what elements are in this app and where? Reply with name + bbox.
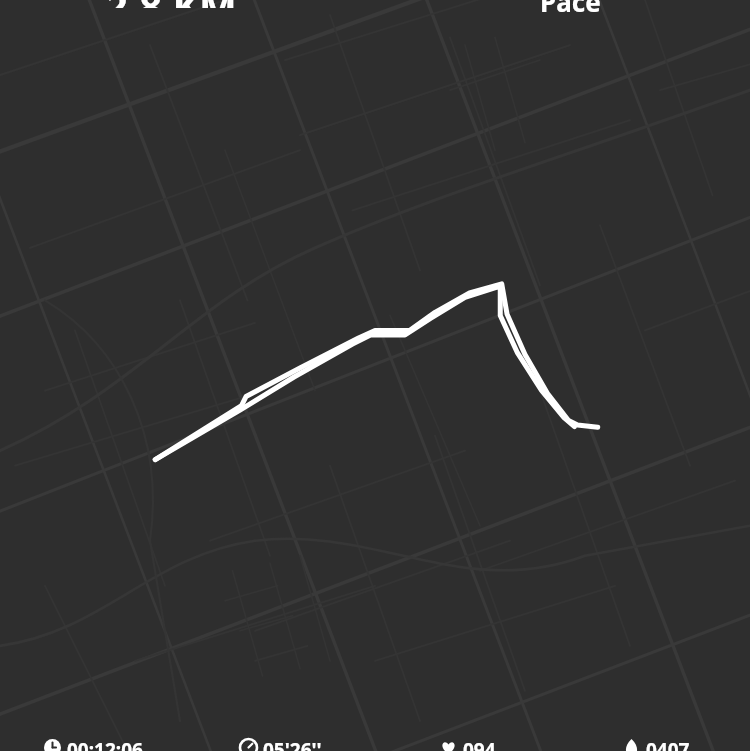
button[interactable]: Duration <box>0 737 187 751</box>
staticText: Pace <box>540 0 601 14</box>
button[interactable]: Calories <box>562 737 750 751</box>
staticText: 0407 <box>646 737 690 751</box>
staticText: 00:12:06 <box>67 737 143 751</box>
staticText: 2,8 KM <box>105 0 237 8</box>
staticText: 094 <box>463 737 496 751</box>
button[interactable]: 2,8 KM <box>105 0 237 8</box>
staticText: 05'26'' <box>263 737 322 751</box>
button[interactable]: Pace <box>540 0 601 14</box>
button[interactable]: Heart rate <box>374 737 562 751</box>
button[interactable]: Pace <box>187 737 374 751</box>
